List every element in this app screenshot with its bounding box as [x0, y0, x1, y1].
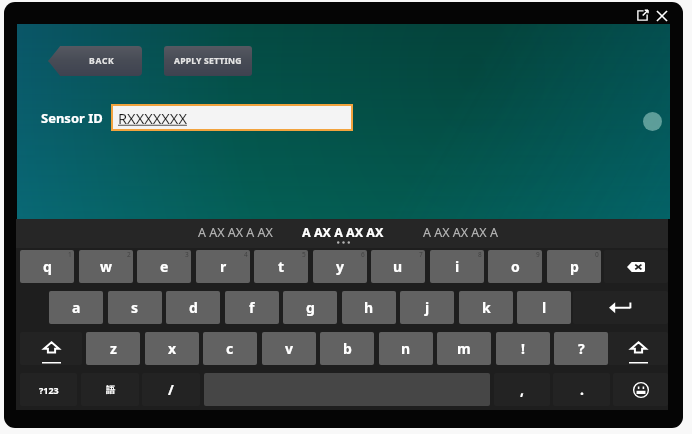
button[interactable]: A AX AX A AX — [182, 219, 288, 248]
staticText: 8 — [478, 250, 482, 259]
staticText: s — [131, 298, 139, 317]
button[interactable]: Close — [653, 7, 670, 24]
button[interactable]: Enter — [573, 291, 668, 324]
staticText: . — [580, 380, 584, 399]
staticText: q — [43, 257, 52, 276]
staticText: Sensor ID — [41, 109, 103, 127]
button[interactable]: ?123 — [20, 373, 77, 406]
staticText: / — [168, 380, 174, 399]
staticText: h — [364, 298, 374, 317]
staticText: 語 — [106, 384, 115, 395]
button[interactable]: Change language — [81, 373, 139, 406]
staticText: o — [511, 257, 520, 276]
button[interactable]: k — [459, 291, 513, 324]
button[interactable]: h — [342, 291, 396, 324]
button[interactable]: Open in new window — [634, 7, 651, 24]
staticText: r — [220, 257, 227, 276]
staticText: e — [160, 257, 169, 276]
staticText: b — [343, 339, 352, 358]
button[interactable]: g — [283, 291, 337, 324]
staticText: w — [100, 257, 112, 276]
staticText: x — [168, 339, 177, 358]
staticText: p — [570, 257, 579, 276]
staticText: , — [520, 380, 524, 399]
staticText: z — [110, 339, 117, 358]
staticText: t — [278, 257, 285, 276]
button[interactable]: e — [137, 250, 191, 283]
staticText: u — [393, 257, 403, 276]
staticText: g — [306, 298, 315, 317]
staticText: 6 — [361, 250, 365, 259]
button[interactable]: Shift — [608, 332, 668, 365]
button[interactable]: s — [108, 291, 162, 324]
button[interactable]: q — [20, 250, 74, 283]
button[interactable]: n — [379, 332, 433, 365]
button[interactable]: . — [553, 373, 610, 406]
staticText: v — [285, 339, 293, 358]
staticText: 2 — [127, 250, 131, 259]
staticText: 9 — [536, 250, 540, 259]
staticText: A AX AX AX A — [423, 224, 498, 241]
button[interactable]: t — [254, 250, 308, 283]
staticText: APPLY SETTING — [174, 55, 242, 67]
staticText: RXXXXXXX — [118, 108, 187, 128]
button[interactable]: v — [262, 332, 316, 365]
staticText: 1 — [68, 250, 72, 259]
staticText: BACK — [89, 55, 115, 67]
button[interactable]: w — [79, 250, 133, 283]
staticText: a — [72, 298, 81, 317]
button[interactable]: APPLY SETTING — [164, 46, 252, 76]
staticText: k — [482, 298, 491, 317]
staticText: 7 — [419, 250, 423, 259]
button[interactable]: Backspace — [604, 250, 668, 283]
button[interactable]: , — [494, 373, 550, 406]
button[interactable]: l — [517, 291, 571, 324]
staticText: i — [455, 257, 460, 276]
button[interactable]: u — [371, 250, 425, 283]
button[interactable]: Shift — [20, 332, 82, 365]
staticText: ! — [521, 339, 525, 358]
button[interactable]: d — [166, 291, 220, 324]
staticText: ? — [578, 339, 585, 358]
staticText: 4 — [244, 250, 248, 259]
button[interactable]: / — [142, 373, 200, 406]
staticText: f — [249, 298, 255, 317]
button[interactable]: A AX AX AX A — [407, 219, 513, 248]
staticText: l — [542, 298, 547, 317]
button[interactable]: ! — [496, 332, 550, 365]
button[interactable]: r — [196, 250, 250, 283]
staticText: 0 — [595, 250, 599, 259]
button[interactable]: BACK — [48, 46, 142, 76]
button[interactable]: p — [547, 250, 601, 283]
staticText: m — [457, 339, 471, 358]
button[interactable]: f — [225, 291, 279, 324]
button[interactable]: a — [49, 291, 103, 324]
staticText: ?123 — [39, 384, 59, 396]
button[interactable]: y — [313, 250, 367, 283]
button[interactable]: i — [430, 250, 484, 283]
button[interactable]: ? — [554, 332, 608, 365]
staticText: 5 — [302, 250, 306, 259]
button[interactable]: j — [400, 291, 454, 324]
staticText: d — [189, 298, 198, 317]
button[interactable]: o — [488, 250, 542, 283]
staticText: n — [401, 339, 411, 358]
button[interactable]: A AX A AX AX — [300, 219, 386, 248]
staticText: A AX AX A AX — [198, 224, 273, 241]
staticText: 3 — [185, 250, 189, 259]
staticText: j — [425, 298, 430, 317]
button[interactable]: Emoji — [613, 373, 668, 406]
button[interactable]: z — [86, 332, 140, 365]
button[interactable]: b — [320, 332, 374, 365]
button[interactable]: x — [145, 332, 199, 365]
staticText: y — [336, 257, 344, 276]
button[interactable]: c — [203, 332, 257, 365]
button[interactable]: RXXXXXXX — [113, 106, 351, 129]
staticText: c — [226, 339, 234, 358]
button[interactable]: m — [437, 332, 491, 365]
staticText: A AX A AX AX — [302, 224, 384, 241]
